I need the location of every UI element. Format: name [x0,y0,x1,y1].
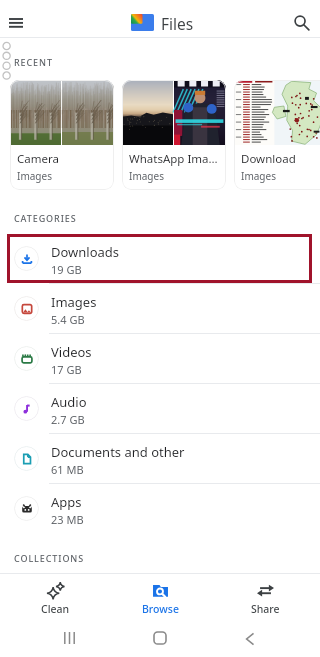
button[interactable]: Menu [3,10,29,36]
staticText: Images [51,293,97,311]
staticText: 2.7 GB [51,412,85,427]
staticText: Images [129,169,164,183]
staticText: COLLECTIONS [14,552,85,564]
staticText: Download [241,151,296,167]
button[interactable]: Recents [52,621,86,655]
staticText: 17 GB [51,362,82,377]
button[interactable]: Apps [0,484,320,533]
button[interactable]: Download [234,80,320,190]
button[interactable]: Browse [110,574,210,623]
staticText: Browse [142,602,179,616]
button[interactable]: WhatsApp Ima… [122,80,226,190]
button[interactable]: Share [215,574,315,623]
button[interactable]: Downloads [0,234,320,283]
staticText: 19 GB [51,262,82,277]
staticText: Images [241,169,276,183]
button[interactable]: Images [0,284,320,333]
button[interactable]: Back [233,622,267,656]
staticText: 5.4 GB [51,312,85,327]
staticText: Files [161,13,194,34]
staticText: Documents and other [51,443,185,461]
button[interactable]: Search [288,9,316,37]
staticText: Downloads [51,243,120,261]
staticText: 23 MB [51,512,84,527]
staticText: 61 MB [51,462,84,477]
staticText: Audio [51,393,87,411]
button[interactable]: Clean [5,574,105,623]
staticText: Videos [51,343,92,361]
staticText: Apps [51,493,82,511]
button[interactable]: Camera [10,80,114,190]
staticText: RECENT [14,56,53,68]
staticText: Clean [41,602,70,616]
staticText: Camera [17,151,59,167]
staticText: CATEGORIES [14,212,77,224]
button[interactable]: Videos [0,334,320,383]
button[interactable]: Audio [0,384,320,433]
staticText: Images [17,169,52,183]
staticText: Share [251,602,280,616]
button[interactable]: Documents and other [0,434,320,483]
button[interactable]: Home [143,621,177,655]
staticText: WhatsApp Ima… [129,151,218,167]
